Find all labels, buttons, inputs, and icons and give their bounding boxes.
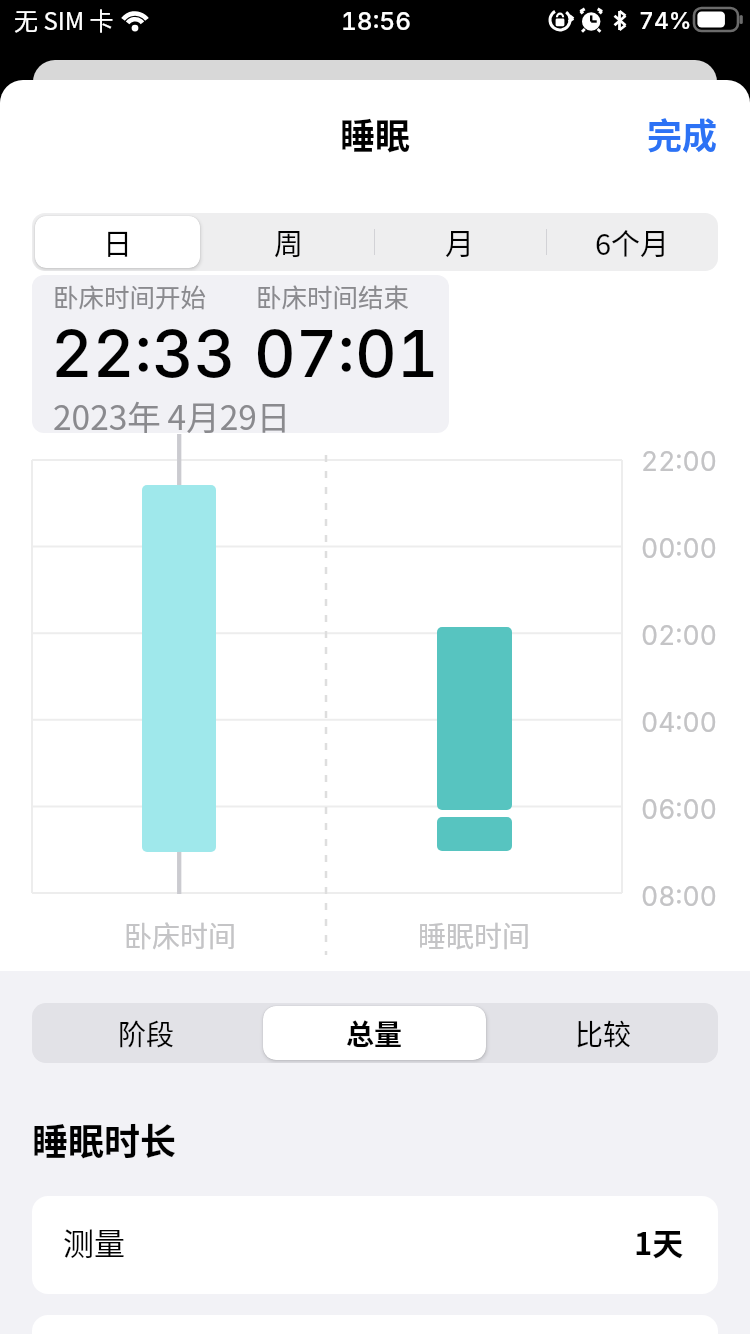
button[interactable]: 月	[374, 213, 546, 271]
staticText: 1天	[634, 1219, 684, 1264]
button[interactable]: 周	[203, 213, 374, 271]
staticText: 00:00	[641, 532, 717, 564]
button[interactable]: 阶段	[32, 1003, 260, 1063]
staticText: 卧床时间	[124, 915, 237, 956]
staticText: 总量	[346, 1013, 403, 1054]
staticText: 22:00	[641, 445, 717, 477]
button[interactable]: 6个月	[546, 213, 718, 271]
other: Battery 74 percent	[691, 4, 747, 36]
staticText: 睡眠	[340, 108, 411, 159]
staticText: 74%	[639, 7, 692, 35]
staticText: 2023年 4月29日	[53, 391, 291, 433]
staticText: 22:33	[51, 315, 236, 393]
button[interactable]: 总量	[260, 1003, 489, 1063]
staticText: 08:00	[641, 880, 717, 912]
staticText: 月	[445, 221, 475, 263]
other: Wi-Fi	[119, 9, 153, 33]
staticText: 无 SIM 卡	[14, 2, 114, 37]
other: Rotation lock	[546, 6, 576, 34]
staticText: 02:00	[641, 619, 717, 651]
staticText: 06:00	[641, 793, 717, 825]
staticText: 睡眠时长	[32, 1113, 177, 1165]
staticText: 测量	[63, 1219, 125, 1264]
staticText: 卧床时间结束	[256, 277, 410, 314]
staticText: 6个月	[595, 221, 670, 263]
staticText: 阶段	[118, 1013, 175, 1054]
staticText: 18:56	[341, 6, 412, 36]
staticText: 比较	[575, 1013, 632, 1054]
other: Alarm set	[578, 6, 606, 34]
staticText: 卧床时间开始	[53, 277, 207, 314]
staticText: 04:00	[641, 706, 717, 738]
staticText: 07:01	[254, 315, 439, 393]
staticText: 日	[103, 221, 133, 263]
staticText: 周	[274, 221, 304, 263]
staticText: 睡眠时间	[418, 915, 531, 956]
button[interactable]: 比较	[489, 1003, 718, 1063]
button[interactable]: 完成	[615, 98, 750, 169]
staticText: 完成	[647, 108, 718, 159]
button[interactable]: 日	[32, 213, 203, 271]
button[interactable]: 测量	[32, 1196, 718, 1294]
other: Bluetooth	[614, 8, 634, 32]
